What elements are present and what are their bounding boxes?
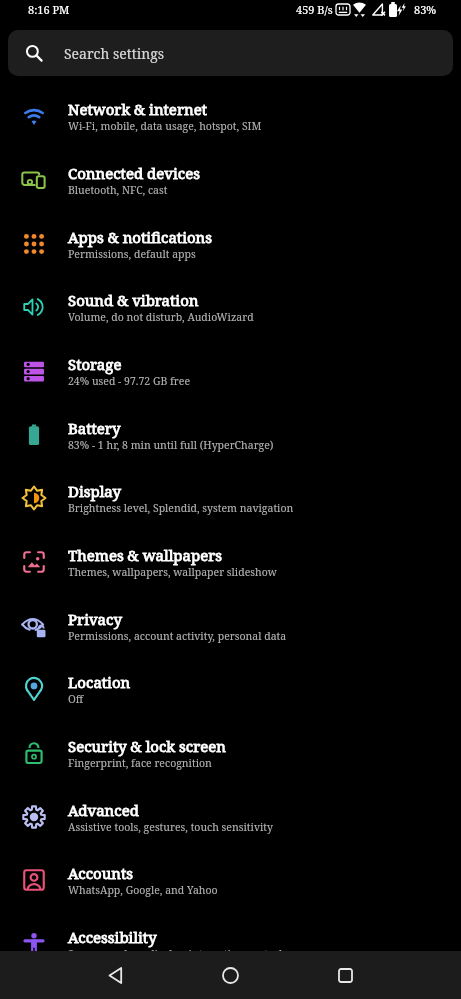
button[interactable]	[58, 951, 173, 999]
staticText: Advanced	[68, 800, 139, 820]
staticText: Fingerprint, face recognition	[68, 756, 212, 770]
staticText: Location	[68, 672, 131, 692]
staticText: Accessibility	[68, 927, 157, 947]
button[interactable]: Security & lock screen	[0, 721, 461, 785]
staticText: 83% - 1 hr, 8 min until full (HyperCharg…	[68, 438, 274, 452]
staticText: Search settings	[64, 44, 165, 63]
staticText: Themes, wallpapers, wallpaper slideshow	[68, 565, 277, 579]
staticText: Screen readers, display, interaction con…	[68, 947, 287, 961]
staticText: Volume, do not disturb, AudioWizard	[68, 310, 254, 324]
button[interactable]: Sound & vibration	[0, 275, 461, 339]
staticText: Apps & notifications	[68, 227, 213, 247]
staticText: 459 B/s	[296, 2, 333, 17]
staticText: Accounts	[68, 863, 133, 883]
staticText: Brightness level, Splendid, system navig…	[68, 501, 294, 515]
staticText: Off	[68, 692, 84, 706]
button[interactable]: Advanced	[0, 785, 461, 848]
staticText: Display	[68, 481, 121, 501]
staticText: Storage	[68, 354, 122, 374]
staticText: Permissions, default apps	[68, 247, 196, 261]
button[interactable]: Network & internet	[0, 84, 461, 148]
button[interactable]: Location	[0, 657, 461, 721]
staticText: WhatsApp, Google, and Yahoo	[68, 883, 218, 897]
button[interactable]: Display	[0, 466, 461, 530]
button[interactable]: Privacy	[0, 594, 461, 657]
staticText: Assistive tools, gestures, touch sensiti…	[68, 820, 273, 834]
button[interactable]	[173, 951, 288, 999]
staticText: Privacy	[68, 609, 122, 629]
staticText: Permissions, account activity, personal …	[68, 629, 287, 643]
button[interactable]: Accounts	[0, 848, 461, 912]
staticText: Wi-Fi, mobile, data usage, hotspot, SIM	[68, 119, 262, 133]
staticText: Bluetooth, NFC, cast	[68, 183, 168, 197]
button[interactable]: Apps & notifications	[0, 212, 461, 275]
staticText: Sound & vibration	[68, 290, 199, 310]
button[interactable]: Storage	[0, 339, 461, 403]
staticText: Battery	[68, 418, 121, 438]
staticText: 8:16 PM	[28, 2, 70, 17]
staticText: Themes & wallpapers	[68, 545, 223, 565]
button[interactable]: Themes & wallpapers	[0, 530, 461, 594]
staticText: 83%	[414, 2, 437, 17]
staticText: 24% used - 97.72 GB free	[68, 374, 191, 388]
button[interactable]: Search settings	[8, 30, 453, 76]
staticText: Network & internet	[68, 99, 207, 119]
staticText: Security & lock screen	[68, 736, 226, 756]
staticText: Connected devices	[68, 163, 200, 183]
button[interactable]: Connected devices	[0, 148, 461, 212]
button[interactable]	[288, 951, 403, 999]
button[interactable]: Accessibility	[0, 912, 461, 976]
button[interactable]: Battery	[0, 403, 461, 466]
